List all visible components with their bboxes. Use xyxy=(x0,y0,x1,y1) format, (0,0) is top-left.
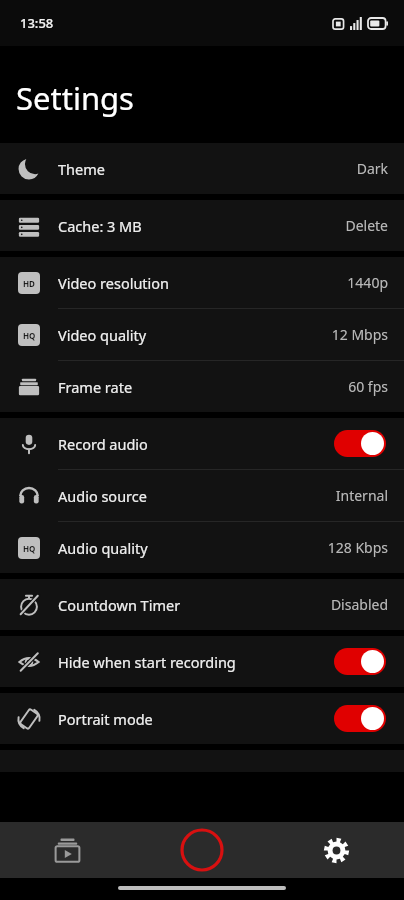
staticText: Countdown Timer xyxy=(58,595,330,615)
button[interactable]: Theme xyxy=(0,143,404,194)
staticText: 1440p xyxy=(347,273,388,292)
staticText: HQ xyxy=(23,330,36,341)
button[interactable]: Audio source xyxy=(0,470,404,521)
button[interactable]: Settings xyxy=(269,822,404,878)
button[interactable]: Hide when start recording xyxy=(0,636,404,687)
staticText: Audio source xyxy=(58,486,335,506)
button[interactable]: Portrait mode xyxy=(0,693,404,744)
button[interactable]: Countdown Timer xyxy=(0,579,404,630)
button[interactable]: Toggle xyxy=(334,430,386,457)
staticText: Portrait mode xyxy=(58,709,334,729)
button[interactable]: Toggle xyxy=(334,648,386,675)
staticText: Video resolution xyxy=(58,273,347,293)
button[interactable]: Record audio xyxy=(0,418,404,469)
button[interactable]: Record xyxy=(134,822,269,878)
staticText: Cache: 3 MB xyxy=(58,216,345,236)
button[interactable]: Frame rate xyxy=(0,361,404,412)
button[interactable]: Videos xyxy=(0,822,134,878)
button[interactable]: HQ xyxy=(0,309,404,360)
button[interactable]: HQ xyxy=(0,522,404,573)
staticText: 60 fps xyxy=(348,377,388,396)
staticText: Internal xyxy=(335,486,388,505)
staticText: Disabled xyxy=(330,595,388,614)
staticText: Hide when start recording xyxy=(58,652,334,672)
staticText: 128 Kbps xyxy=(327,538,388,557)
button[interactable]: HD xyxy=(0,257,404,308)
staticText: 13:58 xyxy=(20,14,54,32)
staticText: Record audio xyxy=(58,434,334,454)
staticText: Settings xyxy=(16,77,134,119)
staticText: HQ xyxy=(23,543,36,554)
staticText: Theme xyxy=(58,159,356,179)
staticText: Dark xyxy=(356,159,388,178)
staticText: Delete xyxy=(345,216,388,235)
staticText: Video quality xyxy=(58,325,331,345)
staticText: Audio quality xyxy=(58,538,327,558)
staticText: Frame rate xyxy=(58,377,348,397)
staticText: 12 Mbps xyxy=(331,325,388,344)
button[interactable]: Cache: 3 MB xyxy=(0,200,404,251)
button[interactable]: Toggle xyxy=(334,705,386,732)
staticText: HD xyxy=(23,278,35,289)
